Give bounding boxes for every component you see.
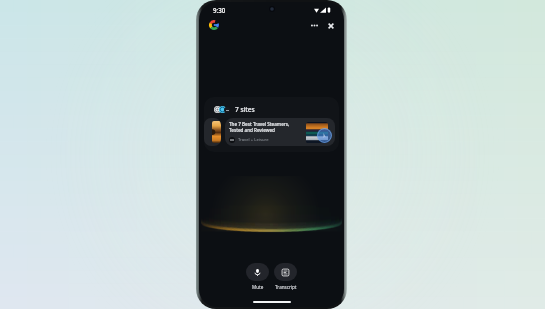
button[interactable]: 7 sites <box>204 97 339 152</box>
button[interactable]: The 7 Best Travel Steamers, Tested and R… <box>225 118 335 146</box>
button[interactable]: Transcript <box>274 263 297 281</box>
staticText: 7 sites <box>235 105 255 114</box>
staticText: Mute <box>252 284 264 290</box>
button[interactable]: More options <box>308 19 321 32</box>
button[interactable]: Mute <box>246 263 269 281</box>
button[interactable]: Close <box>324 19 337 32</box>
staticText: 9:30 <box>213 6 226 14</box>
button[interactable]: Google <box>206 17 222 33</box>
button[interactable]: Previous article <box>204 118 221 146</box>
staticText: Travel + Leisure <box>238 137 269 143</box>
staticText: The 7 Best Travel Steamers, Tested and R… <box>229 121 290 134</box>
staticText: Transcript <box>275 284 297 290</box>
